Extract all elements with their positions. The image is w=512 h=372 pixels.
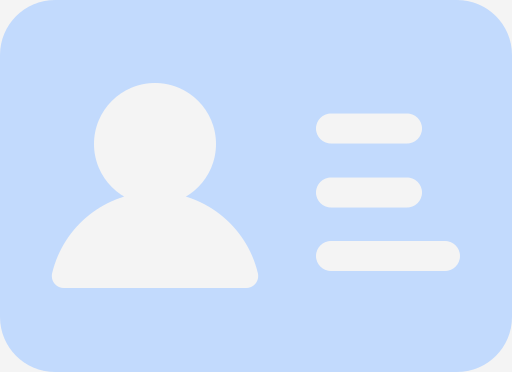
button[interactable]: Phone number — [316, 177, 422, 207]
button[interactable]: Email address — [316, 241, 460, 271]
button[interactable]: Name — [316, 113, 422, 143]
button[interactable]: Contact photo — [0, 0, 512, 372]
button[interactable]: Contact card — [0, 0, 512, 372]
